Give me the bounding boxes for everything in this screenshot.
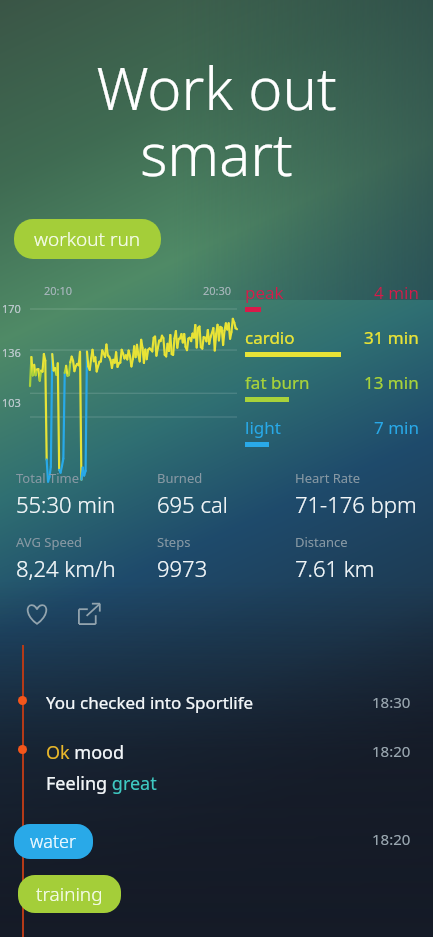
button[interactable]: peak [245, 281, 419, 312]
staticText: peak [245, 281, 284, 304]
staticText: 18:20 [372, 829, 411, 849]
button[interactable]: workout run [14, 219, 161, 259]
staticText: 18:20 [372, 741, 411, 761]
button[interactable]: water [14, 824, 93, 859]
staticText: Total Time [16, 469, 79, 487]
staticText: 9973 [157, 553, 208, 583]
staticText: water [30, 829, 77, 854]
button[interactable]: fat burn [245, 371, 419, 402]
staticText: 4 min [374, 281, 419, 304]
staticText: Distance [295, 533, 348, 551]
staticText: 7 min [374, 416, 419, 439]
staticText: 8,24 km/h [16, 553, 116, 583]
button[interactable]: Share [72, 597, 106, 631]
staticText: Burned [157, 469, 203, 487]
staticText: workout run [34, 226, 141, 252]
staticText: Ok mood [46, 740, 125, 765]
staticText: training [36, 881, 103, 907]
staticText: light [245, 416, 281, 439]
button[interactable]: You checked into Sportlife [0, 691, 433, 714]
staticText: 695 cal [157, 489, 228, 519]
staticText: 103 [2, 395, 21, 410]
staticText: 31 min [364, 326, 419, 349]
staticText: 20:30 [203, 283, 232, 298]
staticText: 136 [2, 345, 21, 360]
staticText: 55:30 min [16, 489, 116, 519]
staticText: fat burn [245, 371, 310, 394]
button[interactable]: Ok mood [0, 740, 433, 796]
staticText: You checked into Sportlife [46, 691, 254, 714]
staticText: AVG Speed [16, 533, 83, 551]
staticText: Feeling great [46, 771, 157, 796]
staticText: 18:30 [372, 692, 411, 712]
staticText: 71-176 bpm [295, 489, 417, 519]
button[interactable]: cardio [245, 326, 419, 357]
staticText: 20:10 [44, 283, 73, 298]
button[interactable]: light [245, 416, 419, 447]
staticText: Steps [157, 533, 191, 551]
button[interactable]: Like [20, 597, 54, 631]
staticText: 170 [2, 301, 21, 316]
staticText: cardio [245, 326, 295, 349]
staticText: 13 min [364, 371, 419, 394]
staticText: Work out smart [0, 48, 433, 193]
staticText: Heart Rate [295, 469, 361, 487]
staticText: 7.61 km [295, 553, 375, 583]
button[interactable]: training [18, 875, 121, 913]
